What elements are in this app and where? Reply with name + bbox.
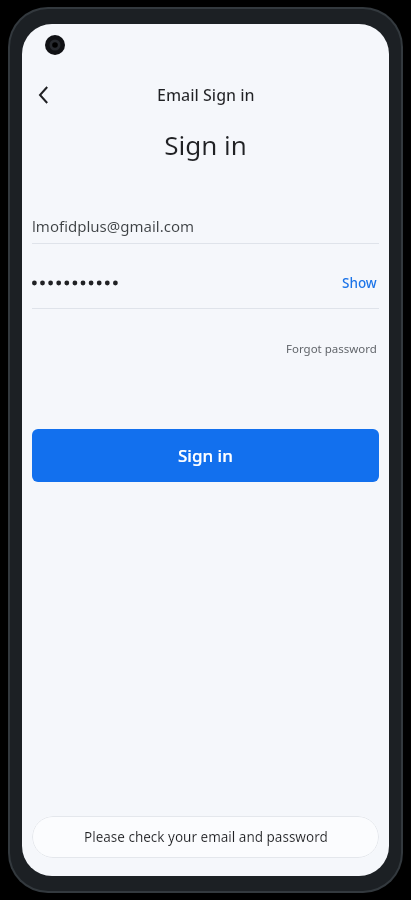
button[interactable]: Show xyxy=(340,270,379,296)
button[interactable]: Back xyxy=(24,75,64,115)
staticText: Please check your email and password xyxy=(84,828,328,846)
button[interactable]: Sign in xyxy=(32,429,379,482)
button[interactable]: lmofidplus@gmail.com xyxy=(32,209,379,243)
staticText: Sign in xyxy=(178,444,233,467)
button[interactable]: Forgot password xyxy=(284,337,379,361)
staticText: Email Sign in xyxy=(157,84,255,106)
button[interactable]: Please check your email and password xyxy=(32,816,379,858)
staticText: lmofidplus@gmail.com xyxy=(32,216,194,236)
staticText: Show xyxy=(342,274,377,292)
staticText: Sign in xyxy=(22,127,389,162)
staticText: Forgot password xyxy=(286,341,377,357)
